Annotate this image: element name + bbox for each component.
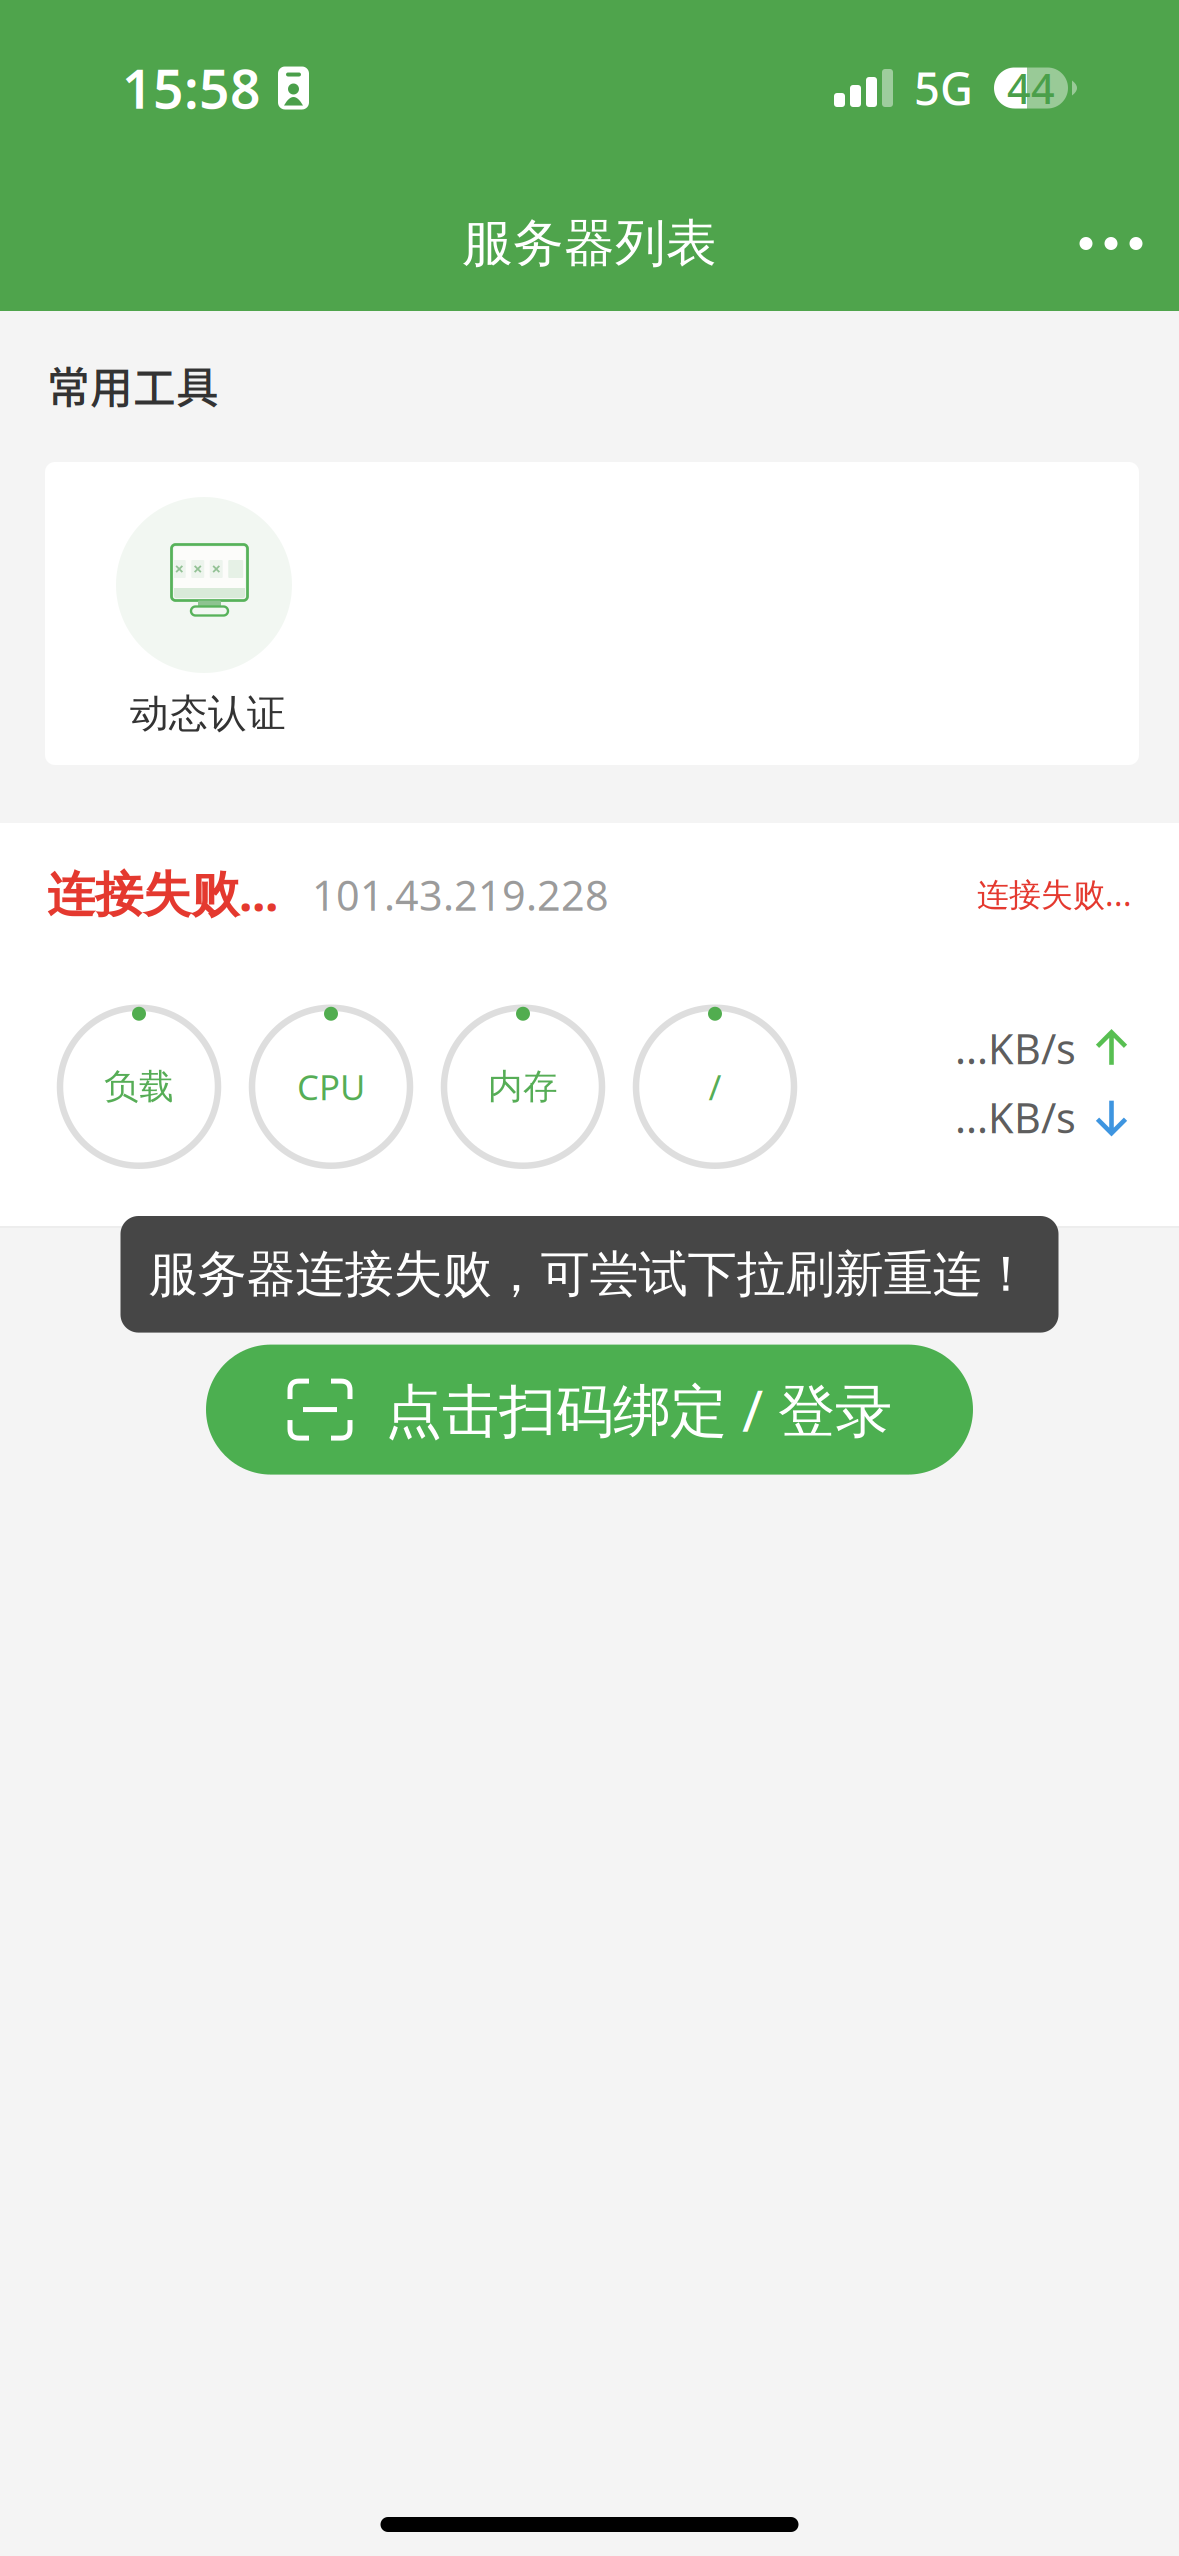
- staticText: 5G: [914, 58, 973, 118]
- staticText: ...KB/s: [955, 1021, 1076, 1076]
- staticText: 常用工具: [47, 354, 219, 416]
- staticText: 点击扫码绑定 / 登录: [385, 1371, 892, 1448]
- staticText: 内存: [488, 1065, 558, 1108]
- staticText: 动态认证: [130, 690, 286, 737]
- staticText: /: [708, 1064, 721, 1110]
- staticText: 44: [1007, 61, 1055, 115]
- staticText: 服务器列表: [462, 212, 717, 275]
- staticText: CPU: [297, 1064, 365, 1110]
- staticText: 101.43.219.228: [312, 867, 609, 922]
- staticText: 连接失败...: [977, 873, 1132, 915]
- staticText: 服务器连接失败，可尝试下拉刷新重连！: [148, 1244, 1030, 1305]
- button[interactable]: 点击扫码绑定 / 登录: [206, 1345, 973, 1475]
- staticText: 15:58: [122, 53, 261, 123]
- staticText: 连接失败...: [47, 861, 278, 925]
- staticText: 负载: [104, 1065, 174, 1108]
- staticText: ...KB/s: [955, 1090, 1076, 1145]
- button[interactable]: More options: [1047, 183, 1175, 303]
- button[interactable]: 动态认证: [45, 462, 1139, 765]
